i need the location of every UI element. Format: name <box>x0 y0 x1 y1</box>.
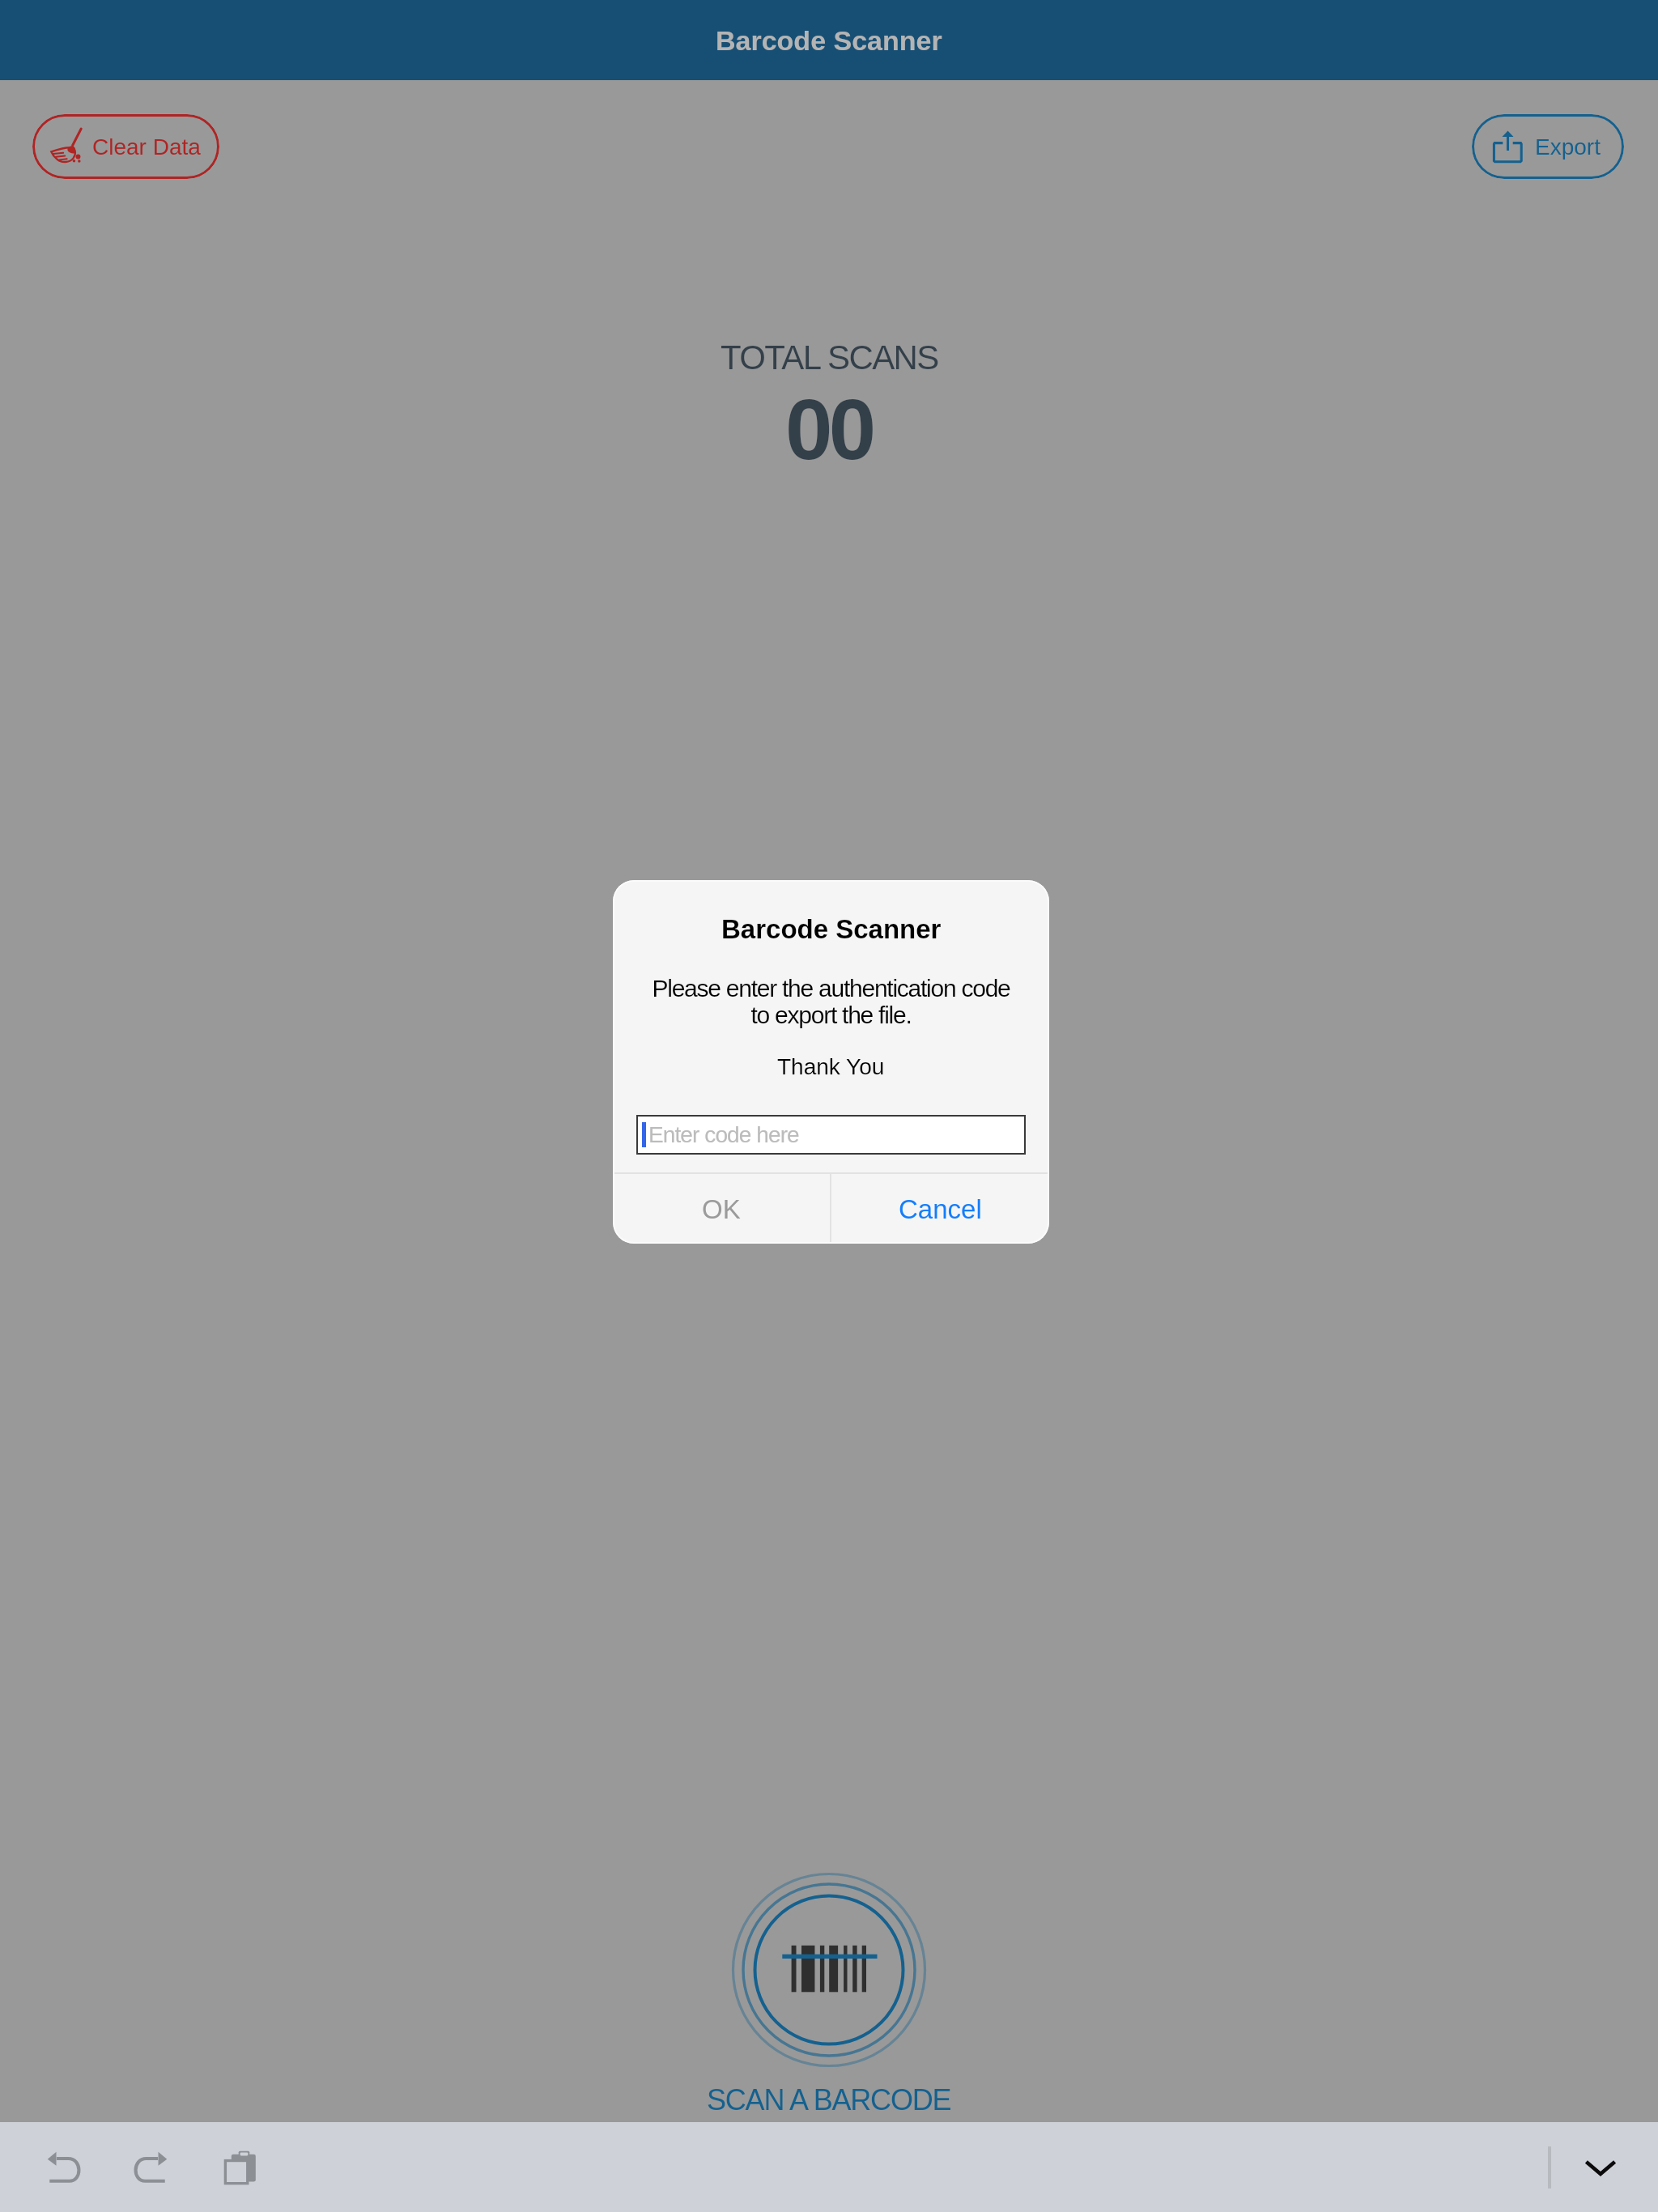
button[interactable]: Paste <box>206 2133 274 2201</box>
staticText: Barcode Scanner <box>721 914 942 944</box>
button[interactable]: SCAN A BARCODE <box>0 1869 1658 2116</box>
button[interactable]: Export <box>1472 114 1624 179</box>
staticText: Barcode Scanner <box>716 25 942 56</box>
button[interactable]: Hide keyboard <box>1567 2133 1635 2201</box>
staticText: 00 <box>785 382 873 477</box>
staticText: Export <box>1535 134 1601 160</box>
staticText: OK <box>702 1194 741 1224</box>
staticText: TOTAL SCANS <box>721 338 938 376</box>
button[interactable]: OK <box>613 1174 830 1244</box>
staticText: SCAN A BARCODE <box>707 2083 951 2116</box>
button[interactable]: Redo <box>116 2133 184 2201</box>
staticText: Clear Data <box>92 134 201 160</box>
button[interactable]: Cancel <box>831 1174 1049 1244</box>
staticText: Cancel <box>899 1194 982 1224</box>
staticText: Thank You <box>777 1054 885 1079</box>
staticText: Please enter the authentication code to … <box>652 975 1010 1028</box>
staticText: Enter code here <box>648 1122 799 1147</box>
button[interactable]: Undo <box>31 2133 99 2201</box>
button[interactable]: Clear Data <box>32 114 219 179</box>
